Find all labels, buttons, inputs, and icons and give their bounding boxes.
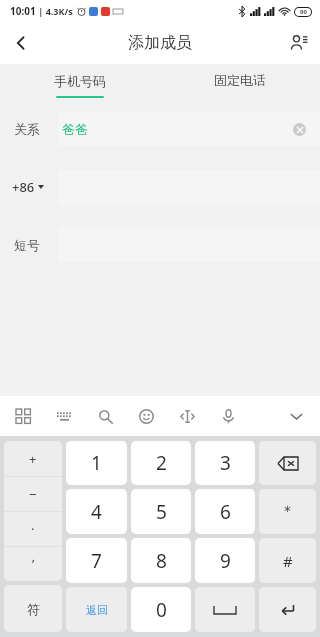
button[interactable]: Emoji <box>135 405 157 427</box>
button[interactable]: ＊ <box>259 489 316 534</box>
button[interactable]: +86 <box>12 178 58 196</box>
button[interactable]: 3 <box>195 441 255 485</box>
staticText: 1 <box>91 450 102 476</box>
staticText: 0 <box>156 597 167 623</box>
button[interactable]: Keyboard layout <box>53 405 75 427</box>
staticText: 关系 <box>14 121 58 137</box>
staticText: + <box>29 450 37 468</box>
button[interactable]: Back <box>0 22 42 64</box>
staticText: 手机号码 <box>54 73 106 89</box>
button[interactable]: 9 <box>195 538 255 583</box>
button[interactable]: # <box>259 538 316 583</box>
button[interactable]: Hide keyboard <box>284 404 308 428</box>
button[interactable]: Space <box>195 587 255 632</box>
staticText: 爸爸 <box>62 121 88 137</box>
staticText: 8 <box>156 548 167 574</box>
staticText: 6 <box>220 499 231 525</box>
button[interactable]: 1 <box>66 441 127 485</box>
staticText: 添加成员 <box>128 33 192 53</box>
button[interactable]: 固定电话 <box>160 64 320 106</box>
button[interactable]: 符 <box>4 585 62 632</box>
button[interactable]: − <box>4 477 62 511</box>
button[interactable]: 7 <box>66 538 127 583</box>
staticText: 3 <box>220 450 231 476</box>
button[interactable]: 0 <box>131 587 191 632</box>
staticText: ʼ <box>32 555 35 573</box>
button[interactable]: 6 <box>195 489 255 534</box>
staticText: 短号 <box>14 237 58 253</box>
staticText: +86 <box>12 178 35 196</box>
button[interactable]: Clear <box>293 123 306 136</box>
staticText: | 4.3K/s <box>36 5 73 17</box>
button[interactable]: Enter <box>259 587 316 632</box>
staticText: 返回 <box>86 603 108 617</box>
staticText: 4 <box>91 499 102 525</box>
button[interactable]: Text selection <box>176 405 198 427</box>
button[interactable]: 爸爸 <box>58 112 320 146</box>
button[interactable]: 8 <box>131 538 191 583</box>
staticText: − <box>29 485 37 503</box>
button[interactable]: 手机号码 <box>0 64 160 106</box>
button[interactable]: Add from contacts <box>278 22 320 64</box>
button[interactable]: · <box>4 512 62 546</box>
staticText: 2 <box>156 450 167 476</box>
button[interactable]: Apps <box>12 405 34 427</box>
staticText: 7 <box>91 548 102 574</box>
staticText: · <box>31 520 35 538</box>
staticText: ＊ <box>280 502 295 521</box>
button[interactable]: 5 <box>131 489 191 534</box>
button[interactable]: Search <box>94 405 116 427</box>
staticText: 90 <box>300 8 307 16</box>
staticText: 10:01 <box>10 4 36 18</box>
button[interactable]: 4 <box>66 489 127 534</box>
staticText: 固定电话 <box>214 72 266 88</box>
staticText: 符 <box>27 601 40 617</box>
button[interactable]: + <box>4 441 62 476</box>
staticText: 9 <box>220 548 231 574</box>
button[interactable]: ʼ <box>4 547 62 581</box>
button[interactable]: Backspace <box>259 441 316 485</box>
staticText: 5 <box>156 499 167 525</box>
button[interactable]: 2 <box>131 441 191 485</box>
staticText: # <box>283 551 293 571</box>
button[interactable]: 返回 <box>66 587 127 632</box>
button[interactable]: Voice input <box>217 405 239 427</box>
